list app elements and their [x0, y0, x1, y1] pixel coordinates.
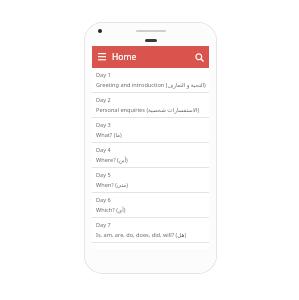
- button[interactable]: Open navigation menu: [95, 50, 109, 64]
- button[interactable]: Day 7: [92, 218, 209, 242]
- button[interactable]: Day 4: [92, 143, 209, 167]
- staticText: Day 2: [96, 96, 111, 104]
- staticText: Day 4: [96, 146, 111, 154]
- staticText: Greeting and introduction (التحية و التع…: [96, 81, 206, 89]
- button[interactable]: Day 3: [92, 118, 209, 142]
- button[interactable]: Search: [192, 50, 206, 64]
- staticText: Where? (أين): [96, 156, 128, 164]
- staticText: Home: [112, 51, 137, 63]
- staticText: Day 6: [96, 196, 111, 204]
- staticText: Day 5: [96, 171, 111, 179]
- button[interactable]: Day 5: [92, 168, 209, 192]
- button[interactable]: Day 6: [92, 193, 209, 217]
- button[interactable]: Day 2: [92, 93, 209, 117]
- staticText: Which? (أي): [96, 206, 126, 214]
- staticText: Day 7: [96, 221, 111, 229]
- staticText: Day 1: [96, 71, 111, 79]
- staticText: When? (متى): [96, 181, 128, 189]
- staticText: Is, am, are, do, does, did, will? (هل): [96, 231, 187, 239]
- staticText: Day 3: [96, 121, 111, 129]
- staticText: What? (ما): [96, 131, 122, 139]
- staticText: Personal enquiries (الاستفسارات شخصية): [96, 106, 200, 114]
- button[interactable]: Day 1: [92, 68, 209, 92]
